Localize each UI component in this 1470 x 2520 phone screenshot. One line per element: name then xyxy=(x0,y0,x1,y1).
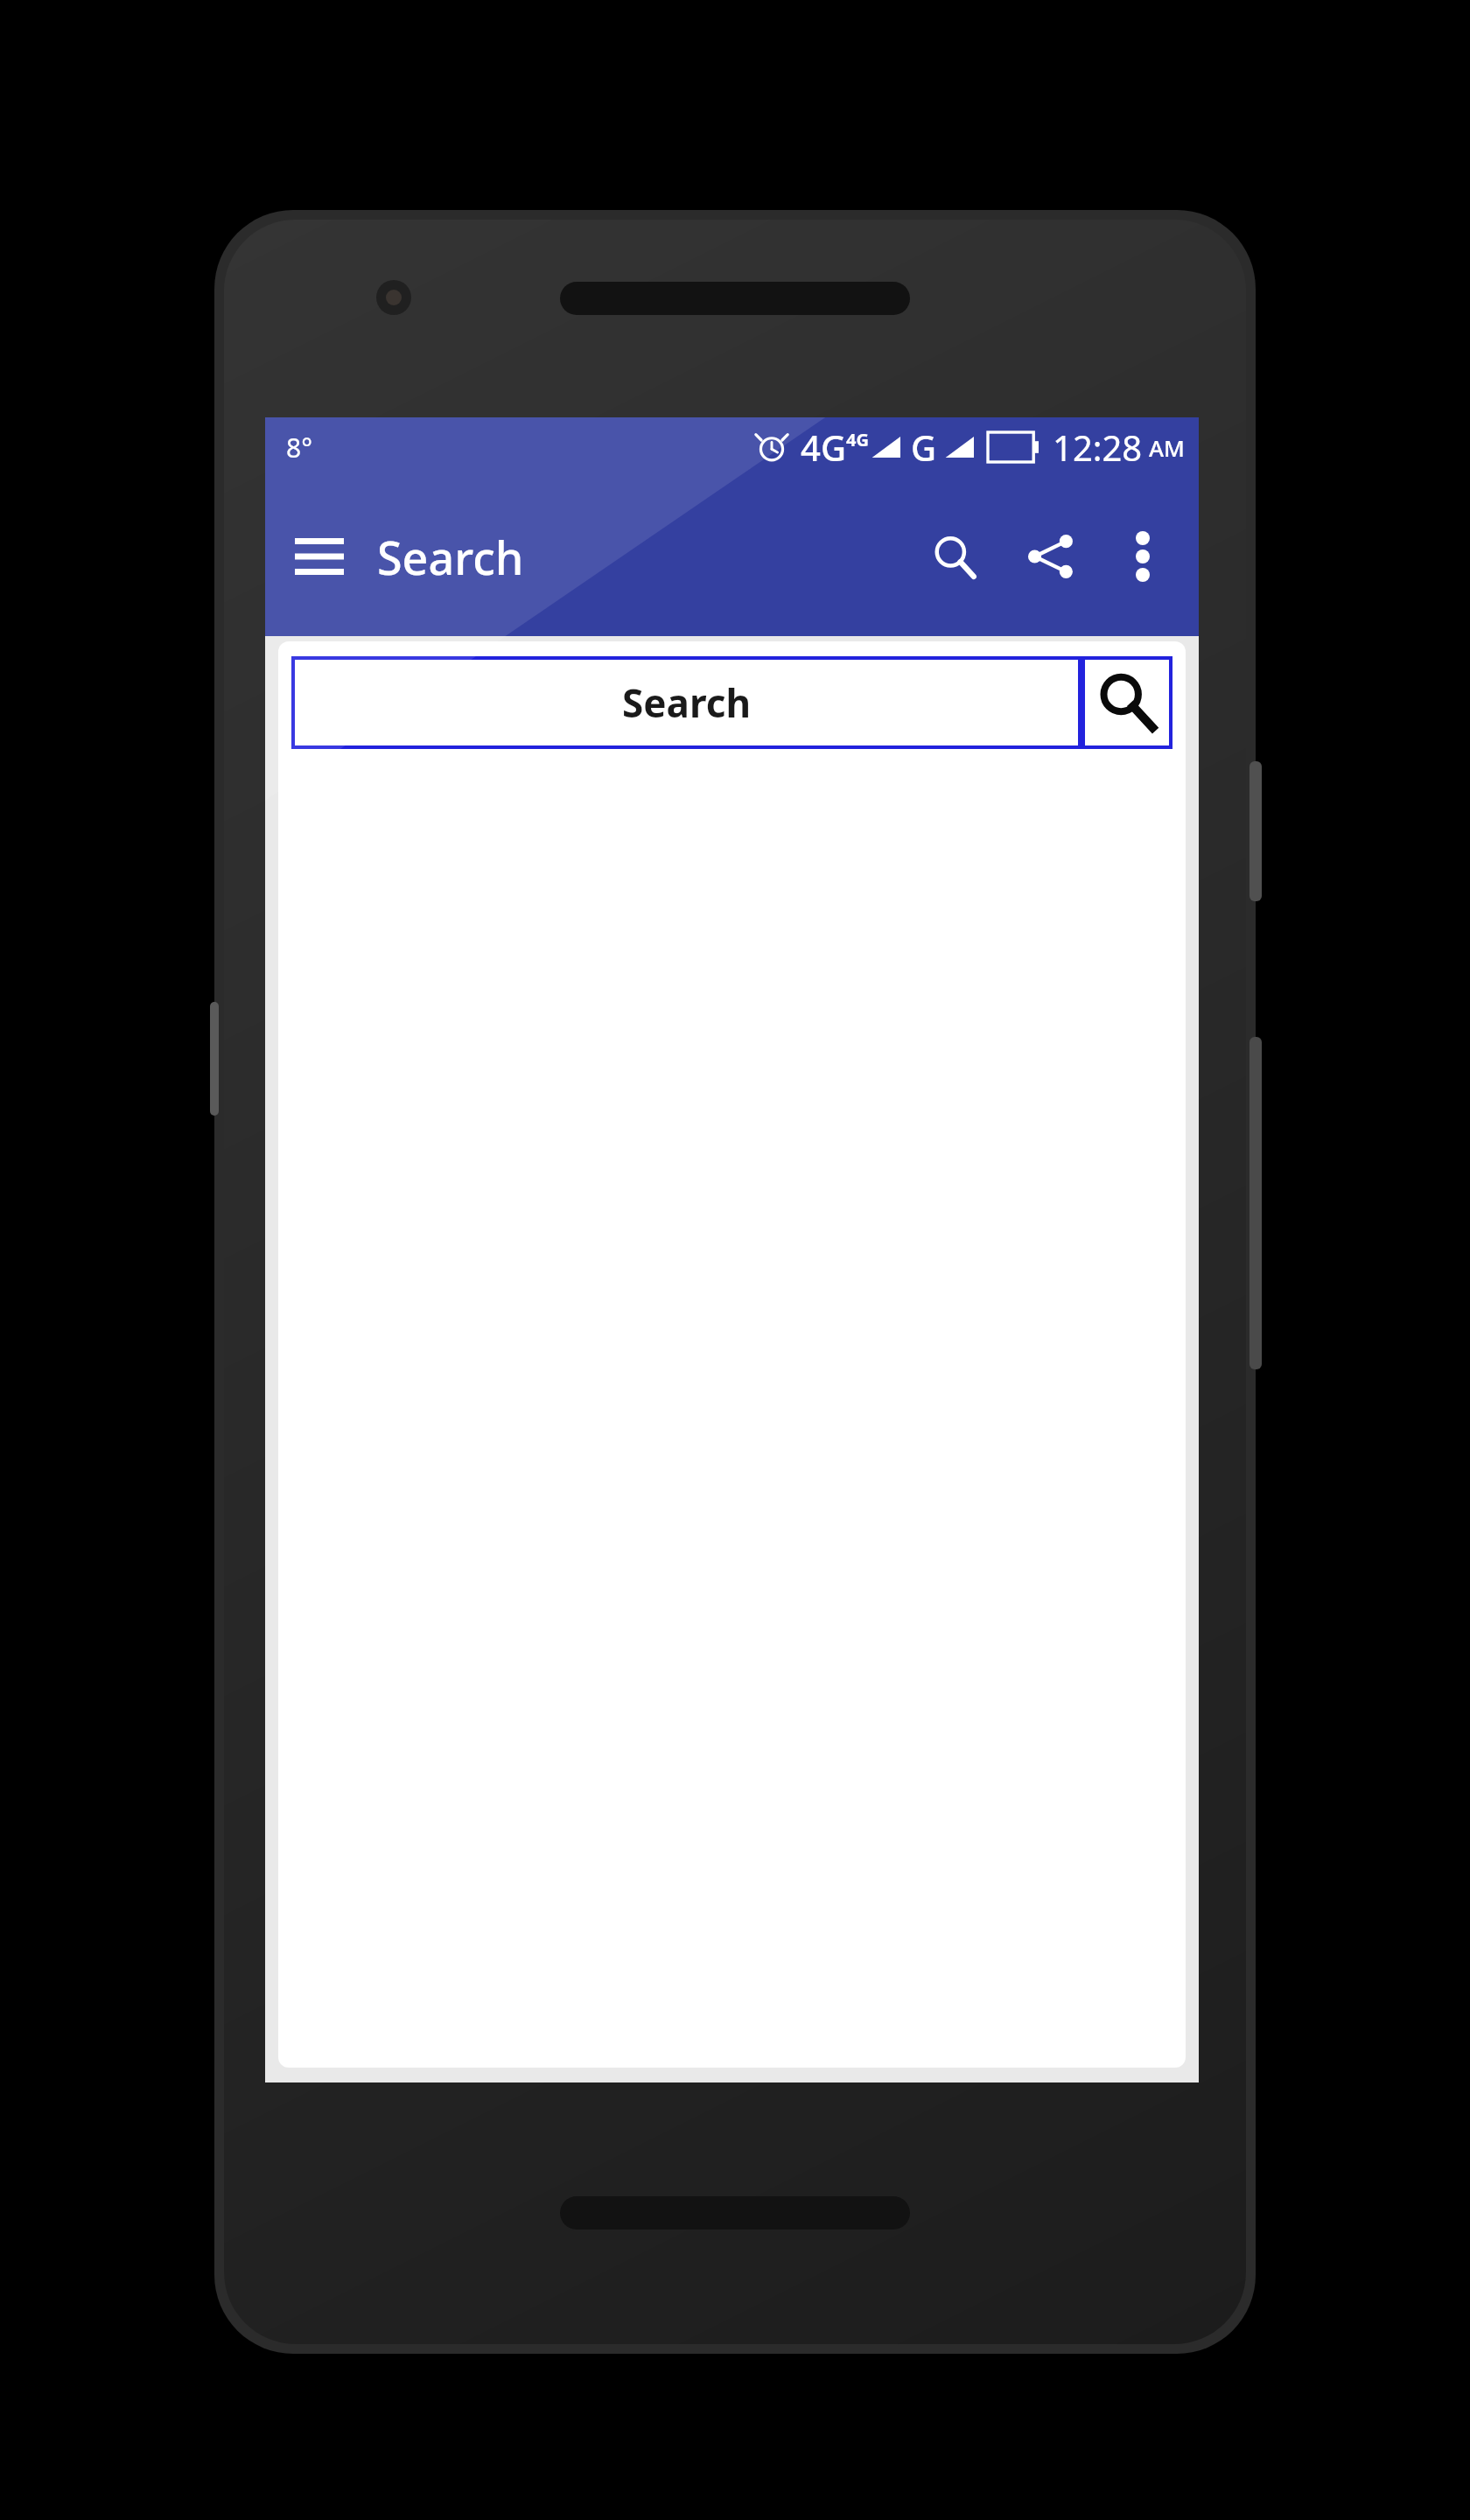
button[interactable]: More options xyxy=(1099,513,1186,600)
button[interactable]: Search xyxy=(1085,660,1169,745)
button[interactable]: Search xyxy=(906,508,1003,605)
staticText: Search xyxy=(622,676,751,729)
staticText: 12:28 xyxy=(1053,423,1143,471)
staticText: 4G xyxy=(846,428,869,451)
staticText: G xyxy=(911,423,937,471)
staticText: 8° xyxy=(286,430,312,465)
staticText: AM xyxy=(1149,432,1185,463)
staticText: 4G xyxy=(801,423,846,471)
button[interactable]: Share xyxy=(1003,508,1099,605)
button[interactable]: Open navigation menu xyxy=(277,514,361,598)
staticText: Search xyxy=(377,526,524,588)
button[interactable]: Search xyxy=(295,660,1078,745)
